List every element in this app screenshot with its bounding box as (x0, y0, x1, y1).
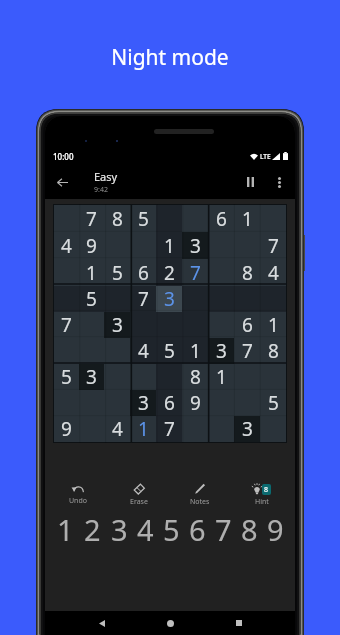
button[interactable]: 6 (208, 205, 234, 232)
button[interactable]: 4 (130, 338, 156, 364)
button[interactable] (130, 232, 156, 259)
button[interactable]: 1 (130, 416, 156, 442)
button[interactable] (208, 259, 234, 286)
button[interactable]: 9 (262, 510, 288, 544)
button[interactable]: 3 (208, 338, 234, 364)
button[interactable]: 8 (236, 510, 262, 544)
button[interactable]: 5 (54, 364, 79, 390)
button[interactable]: 7 (260, 232, 286, 259)
button[interactable]: 9 (54, 416, 79, 442)
button[interactable] (130, 312, 156, 338)
button[interactable]: 6 (156, 390, 182, 416)
button[interactable] (54, 338, 79, 364)
button[interactable]: Recents (227, 611, 251, 635)
button[interactable] (54, 259, 79, 286)
button[interactable] (208, 312, 234, 338)
button[interactable]: 7 (130, 286, 156, 312)
button[interactable]: 3 (79, 364, 104, 390)
button[interactable]: 4 (104, 416, 130, 442)
button[interactable]: 1 (52, 510, 79, 544)
button[interactable]: 3 (106, 510, 132, 544)
button[interactable]: Back (45, 165, 79, 199)
button[interactable]: 8 (231, 481, 293, 509)
button[interactable]: 7 (210, 510, 236, 544)
button[interactable]: 3 (182, 232, 208, 259)
button[interactable] (130, 364, 156, 390)
button[interactable]: Back (90, 611, 114, 635)
button[interactable]: 7 (54, 312, 79, 338)
button[interactable]: 8 (234, 259, 260, 286)
button[interactable]: 5 (260, 390, 286, 416)
button[interactable] (79, 338, 104, 364)
button[interactable]: 8 (182, 364, 208, 390)
button[interactable] (208, 232, 234, 259)
button[interactable]: 3 (104, 312, 130, 338)
button[interactable]: 4 (132, 510, 158, 544)
button[interactable]: 3 (130, 390, 156, 416)
button[interactable]: Pause (235, 167, 265, 197)
button[interactable]: 5 (79, 286, 104, 312)
button[interactable]: Home (158, 611, 182, 635)
button[interactable]: 6 (184, 510, 210, 544)
button[interactable]: 1 (208, 364, 234, 390)
button[interactable]: 4 (260, 259, 286, 286)
button[interactable] (208, 416, 234, 442)
button[interactable]: 7 (234, 338, 260, 364)
button[interactable]: 3 (156, 286, 182, 312)
button[interactable]: Undo (47, 481, 108, 508)
button[interactable] (208, 286, 234, 312)
button[interactable]: 6 (234, 312, 260, 338)
button[interactable]: 2 (79, 510, 106, 544)
button[interactable]: 1 (182, 338, 208, 364)
button[interactable]: 2 (156, 259, 182, 286)
button[interactable]: 7 (79, 205, 104, 232)
button[interactable]: 1 (260, 312, 286, 338)
button[interactable]: 7 (156, 416, 182, 442)
button[interactable]: 4 (54, 232, 79, 259)
button[interactable] (208, 390, 234, 416)
button[interactable]: 5 (156, 338, 182, 364)
button[interactable]: Notes (169, 481, 231, 509)
button[interactable]: 1 (234, 205, 260, 232)
button[interactable]: Erase (108, 481, 169, 509)
button[interactable]: 5 (130, 205, 156, 232)
button[interactable]: 9 (182, 390, 208, 416)
button[interactable]: 7 (182, 259, 208, 286)
button[interactable]: 8 (104, 205, 130, 232)
button[interactable]: 8 (260, 338, 286, 364)
button[interactable]: 5 (158, 510, 184, 544)
button[interactable]: More options (265, 168, 293, 196)
button[interactable]: 1 (156, 232, 182, 259)
button[interactable]: 6 (130, 259, 156, 286)
button[interactable]: 3 (234, 416, 260, 442)
button[interactable]: 9 (79, 232, 104, 259)
button[interactable]: 5 (104, 259, 130, 286)
button[interactable]: 1 (79, 259, 104, 286)
button[interactable] (104, 338, 130, 364)
